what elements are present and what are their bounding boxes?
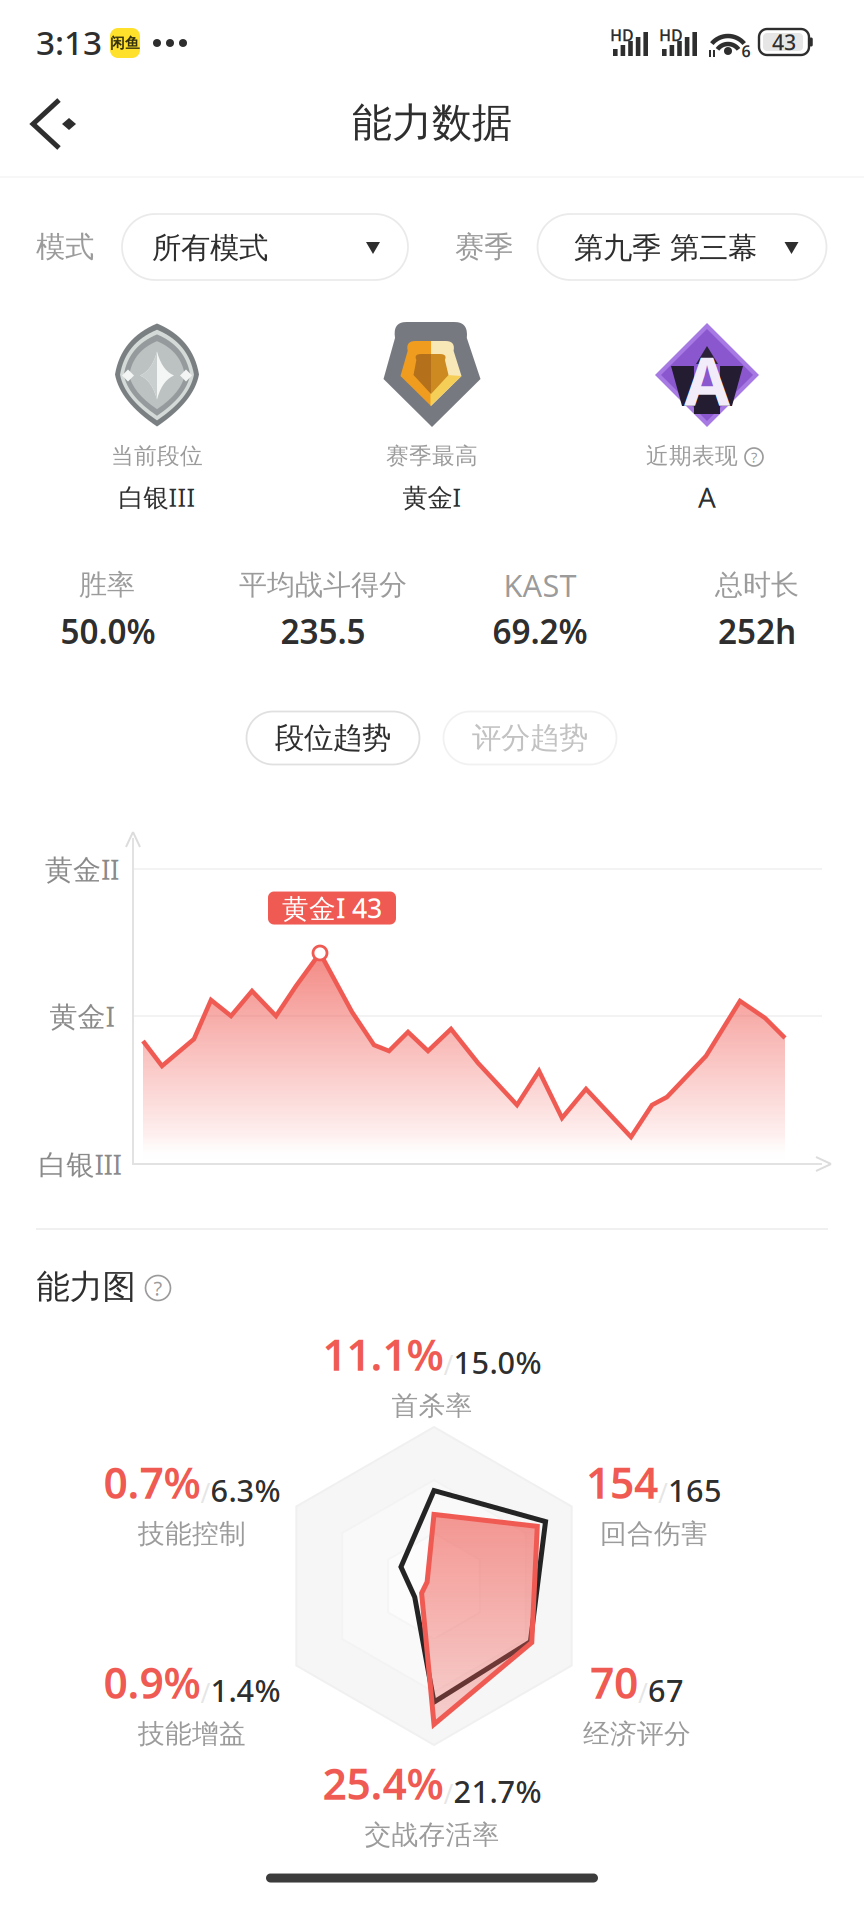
staticText: 15.0% xyxy=(453,1342,541,1382)
staticText: 235.5 xyxy=(280,609,365,653)
staticText: / xyxy=(638,1675,648,1710)
staticText: 所有模式 xyxy=(152,230,268,266)
staticText: 黄金II xyxy=(45,850,119,888)
staticText: 154 xyxy=(586,1454,658,1510)
staticText: 平均战斗得分 xyxy=(239,568,407,602)
staticText: 21.7% xyxy=(453,1771,541,1811)
staticText: 闲鱼 xyxy=(110,34,140,52)
staticText: 黄金I xyxy=(49,997,114,1035)
button[interactable]: 段位趋势 xyxy=(246,711,419,764)
staticText: 总时长 xyxy=(715,568,799,602)
staticText: 0.9% xyxy=(103,1654,200,1710)
staticText: / xyxy=(200,1475,210,1510)
staticText: / xyxy=(200,1675,210,1710)
staticText: 252h xyxy=(718,609,796,653)
staticText: 白银III xyxy=(118,480,195,514)
staticText: 首杀率 xyxy=(391,1389,472,1422)
staticText: 经济评分 xyxy=(583,1717,691,1750)
staticText: 1.4% xyxy=(210,1670,280,1710)
staticText: 第九季 第三幕 xyxy=(574,230,757,266)
staticText: 50.0% xyxy=(60,609,155,653)
staticText: 赛季最高 xyxy=(386,442,478,470)
staticText: KAST xyxy=(503,565,576,605)
staticText: 6.3% xyxy=(210,1470,280,1510)
staticText: 胜率 xyxy=(79,568,135,602)
staticText: 黄金I 43 xyxy=(282,890,382,926)
staticText: HD xyxy=(610,24,634,46)
staticText: 6 xyxy=(741,40,750,62)
staticText: A xyxy=(698,478,716,516)
staticText: 67 xyxy=(648,1670,684,1710)
staticText: / xyxy=(658,1475,668,1510)
staticText: ? xyxy=(153,1275,162,1301)
button[interactable]: 返回 xyxy=(17,85,93,165)
staticText: 模式 xyxy=(36,229,94,265)
staticText: / xyxy=(443,1776,453,1811)
staticText: 段位趋势 xyxy=(275,720,391,756)
staticText: A xyxy=(684,336,730,424)
staticText: 黄金I xyxy=(402,480,461,514)
staticText: 11.1% xyxy=(322,1326,443,1382)
staticText: 能力图 xyxy=(36,1266,135,1307)
staticText: 能力数据 xyxy=(352,98,512,147)
staticText: 3:13 xyxy=(36,20,102,64)
staticText: 技能增益 xyxy=(138,1717,246,1750)
staticText: 69.2% xyxy=(492,609,587,653)
staticText: 当前段位 xyxy=(111,442,203,470)
staticText: 0.7% xyxy=(103,1454,200,1510)
staticText: 评分趋势 xyxy=(472,720,588,756)
staticText: ? xyxy=(751,447,757,467)
button[interactable]: 第九季 第三幕 xyxy=(537,214,826,280)
staticText: 回合伤害 xyxy=(600,1517,708,1550)
staticText: 43 xyxy=(772,28,796,56)
staticText: 白银III xyxy=(38,1145,121,1183)
staticText: 70 xyxy=(590,1654,638,1710)
staticText: / xyxy=(443,1347,453,1382)
staticText: 交战存活率 xyxy=(364,1818,499,1851)
staticText: 25.4% xyxy=(322,1755,443,1811)
button[interactable]: 所有模式 xyxy=(122,214,408,280)
staticText: 近期表现 xyxy=(646,442,738,470)
staticText: 技能控制 xyxy=(138,1517,246,1550)
button[interactable]: 评分趋势 xyxy=(443,711,616,764)
staticText: 165 xyxy=(668,1470,722,1510)
staticText: HD xyxy=(659,24,683,46)
staticText: 赛季 xyxy=(455,229,513,265)
